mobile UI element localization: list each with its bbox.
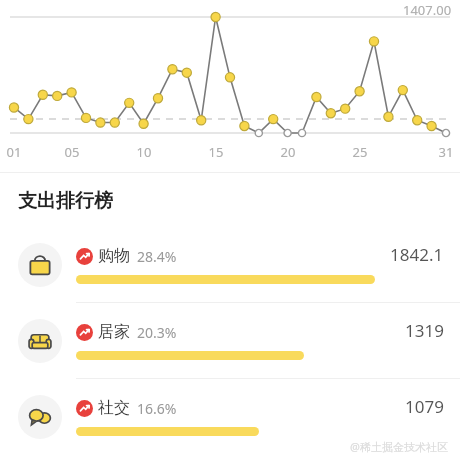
staticText: 10 xyxy=(133,143,155,161)
staticText: 31 xyxy=(435,143,457,161)
staticText: 25 xyxy=(349,143,371,161)
staticText: 20 xyxy=(277,143,299,161)
button[interactable]: Trend xyxy=(0,303,460,378)
button[interactable]: Trend xyxy=(0,379,460,454)
other: Trend xyxy=(76,248,93,265)
staticText: 1842.1 xyxy=(390,243,444,266)
staticText: 1319 xyxy=(405,319,444,342)
button[interactable]: Trend xyxy=(0,227,460,302)
staticText: 支出排行榜 xyxy=(18,189,113,213)
staticText: 05 xyxy=(61,143,83,161)
staticText: 15 xyxy=(205,143,227,161)
staticText: 16.6% xyxy=(137,399,177,418)
staticText: 居家 xyxy=(98,322,130,342)
staticText: 社交 xyxy=(98,398,130,418)
staticText: 01 xyxy=(3,143,25,161)
other: Trend xyxy=(76,400,93,417)
staticText: @稀土掘金技术社区 xyxy=(350,439,448,454)
staticText: 1079 xyxy=(405,395,444,418)
staticText: 28.4% xyxy=(137,247,177,266)
staticText: 20.3% xyxy=(137,323,177,342)
staticText: 购物 xyxy=(98,246,130,266)
staticText: 1407.00 xyxy=(403,1,452,19)
other: Trend xyxy=(76,324,93,341)
